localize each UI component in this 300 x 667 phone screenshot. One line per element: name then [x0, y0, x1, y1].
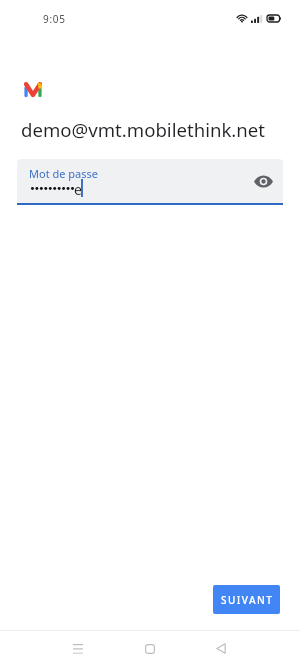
staticText: e: [74, 180, 82, 199]
staticText: demo@vmt.mobilethink.net: [21, 117, 266, 142]
staticText: 9:05: [43, 12, 66, 26]
button[interactable]: Back: [199, 630, 243, 667]
button[interactable]: Home: [128, 630, 172, 667]
button[interactable]: SUIVANT: [213, 585, 280, 614]
staticText: Mot de passe: [29, 166, 98, 181]
button[interactable]: Afficher le mot de passe: [251, 169, 275, 193]
button[interactable]: Recent apps: [56, 630, 100, 667]
staticText: SUIVANT: [221, 593, 274, 607]
button[interactable]: Mot de passe: [17, 159, 283, 203]
